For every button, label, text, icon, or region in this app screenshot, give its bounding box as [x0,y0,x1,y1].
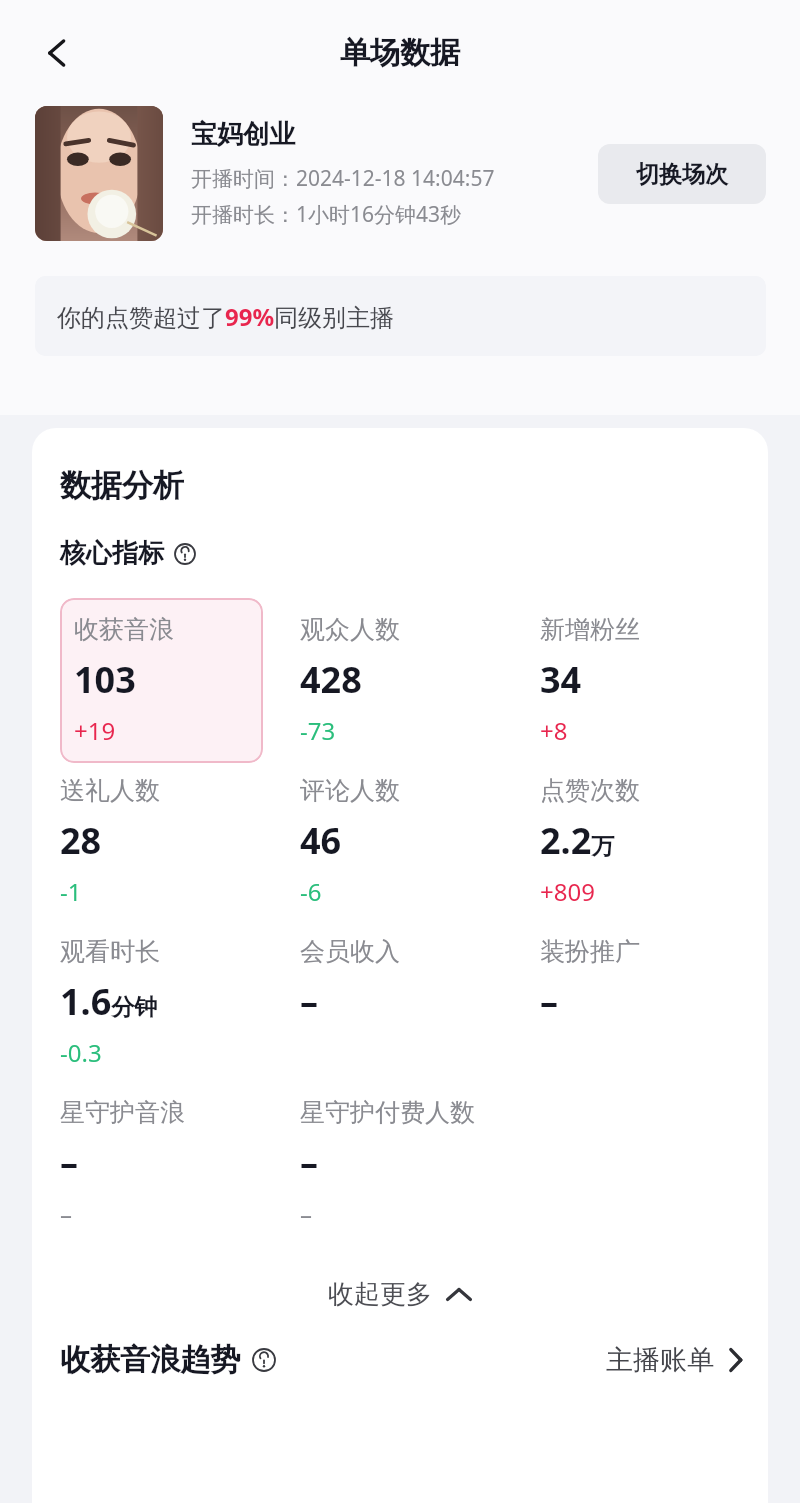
staticText: 核心指标 [60,537,164,570]
button[interactable]: 新增粉丝 [540,598,743,763]
button[interactable]: 收获音浪趋势 [60,1341,276,1379]
staticText: +19 [74,714,116,747]
button[interactable]: 星守护音浪 [60,1097,263,1230]
staticText: 会员收入 [300,936,400,967]
staticText: – [300,1197,312,1230]
button[interactable]: 观看时长 [60,936,263,1069]
staticText: 收起更多 [328,1278,432,1311]
staticText: 观众人数 [300,614,400,645]
staticText: 观看时长 [60,936,160,967]
staticText: -73 [300,714,336,747]
staticText: 103 [74,655,136,704]
staticText: – [300,977,318,1026]
staticText: +8 [540,714,568,747]
button[interactable]: 收起更多 [308,1270,492,1319]
staticText: 数据分析 [60,466,184,505]
button[interactable]: 主播账单 [606,1343,744,1377]
button[interactable]: 点赞次数 [540,775,743,908]
staticText: 开播时间：2024-12-18 14:04:57 [191,164,495,193]
staticText: 收获音浪趋势 [60,1341,240,1379]
button[interactable]: 核心指标 [60,537,196,570]
staticText: – [60,1197,72,1230]
button[interactable]: 装扮推广 [540,936,743,1036]
button[interactable]: 送礼人数 [60,775,263,908]
staticText: 单场数据 [340,34,460,72]
button[interactable]: 观众人数 [300,598,503,763]
button[interactable]: Back [26,22,88,84]
staticText: 46 [300,816,342,865]
button[interactable]: Avatar [35,106,163,241]
staticText: -0.3 [60,1036,102,1069]
staticText: 评论人数 [300,775,400,806]
staticText: 切换场次 [636,160,728,189]
staticText: 点赞次数 [540,775,640,806]
button[interactable]: 星守护付费人数 [300,1097,540,1230]
staticText: +809 [540,875,595,908]
staticText: 送礼人数 [60,775,160,806]
button[interactable]: 评论人数 [300,775,503,908]
staticText: 装扮推广 [540,936,640,967]
staticText: 2.2万 [540,816,615,865]
staticText: – [300,1138,318,1187]
staticText: – [540,977,558,1026]
button[interactable]: 切换场次 [598,144,766,204]
staticText: -6 [300,875,322,908]
staticText: 宝妈创业 [191,118,295,151]
staticText: – [60,1138,78,1187]
button[interactable]: 会员收入 [300,936,503,1036]
staticText: 34 [540,655,582,704]
staticText: -1 [60,875,82,908]
staticText: 你的点赞超过了99%同级别主播 [57,300,395,333]
button[interactable]: 收获音浪 [60,598,263,763]
staticText: 28 [60,816,102,865]
staticText: 1.6分钟 [60,977,158,1026]
staticText: 主播账单 [606,1343,714,1377]
staticText: 星守护音浪 [60,1097,185,1128]
button[interactable]: 你的点赞超过了99%同级别主播 [35,276,766,356]
staticText: 428 [300,655,362,704]
staticText: 收获音浪 [74,614,174,645]
staticText: 新增粉丝 [540,614,640,645]
staticText: 开播时长：1小时16分钟43秒 [191,200,462,229]
staticText: 星守护付费人数 [300,1097,475,1128]
